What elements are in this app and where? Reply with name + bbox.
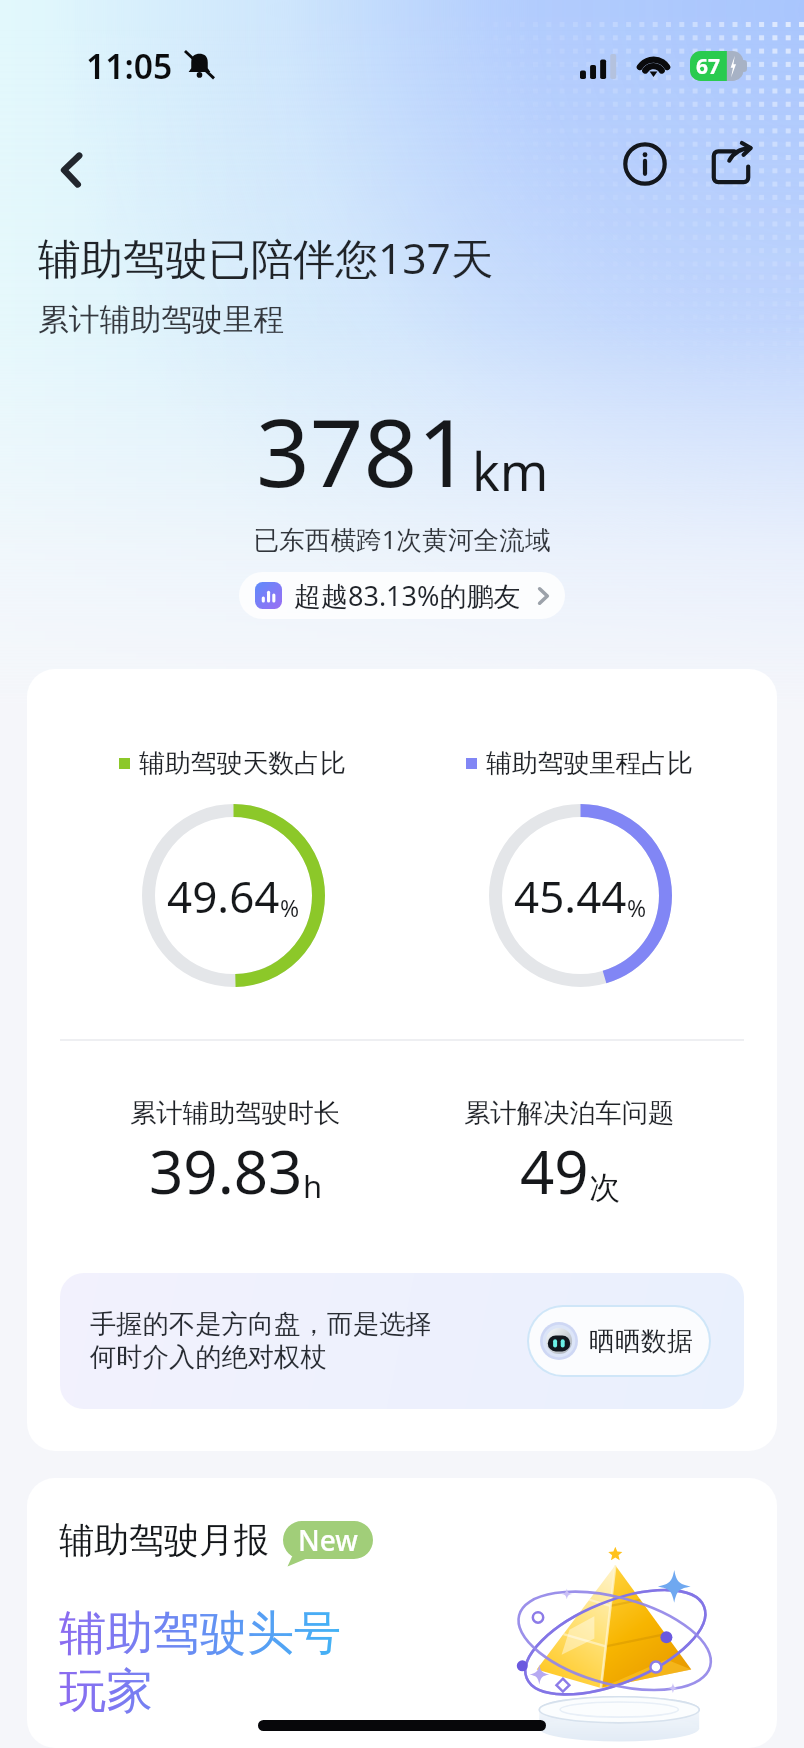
staticText: 辅助驾驶里程占比	[486, 747, 694, 780]
staticText: 辅助驾驶头号 玩家	[59, 1604, 341, 1721]
staticText: %	[627, 892, 647, 923]
staticText: 次	[589, 1168, 620, 1207]
staticText: 累计解决泊车问题	[464, 1097, 675, 1130]
staticText: 67	[690, 52, 726, 81]
button[interactable]: 超越83.13%的鹏友	[239, 572, 565, 619]
staticText: 11:05	[86, 43, 173, 89]
staticText: 49.64	[167, 866, 280, 926]
button[interactable]: Info	[614, 133, 676, 195]
staticText: 累计辅助驾驶里程	[38, 300, 285, 339]
staticText: 49	[520, 1130, 589, 1212]
staticText: New	[298, 1521, 358, 1559]
staticText: 辅助驾驶天数占比	[139, 747, 347, 780]
staticText: 何时介入的绝对权杖	[90, 1341, 327, 1374]
staticText: 辅助驾驶月报	[59, 1518, 269, 1562]
staticText: 超越83.13%的鹏友	[294, 577, 521, 614]
button[interactable]: 晒晒数据	[529, 1307, 709, 1375]
staticText: 39.83	[149, 1130, 303, 1212]
staticText: 累计辅助驾驶时长	[130, 1097, 341, 1130]
staticText: %	[280, 892, 300, 923]
staticText: 45.44	[514, 866, 627, 926]
staticText: h	[303, 1165, 323, 1207]
button[interactable]: Share	[700, 133, 762, 195]
staticText: 辅助驾驶已陪伴您137天	[38, 229, 494, 287]
staticText: 手握的不是方向盘，而是选择	[90, 1308, 432, 1341]
staticText: km	[472, 435, 549, 506]
staticText: 3781	[256, 387, 472, 515]
staticText: 晒晒数据	[589, 1325, 693, 1358]
button[interactable]: Back	[42, 140, 102, 200]
staticText: 已东西横跨1次黄河全流域	[0, 522, 804, 557]
